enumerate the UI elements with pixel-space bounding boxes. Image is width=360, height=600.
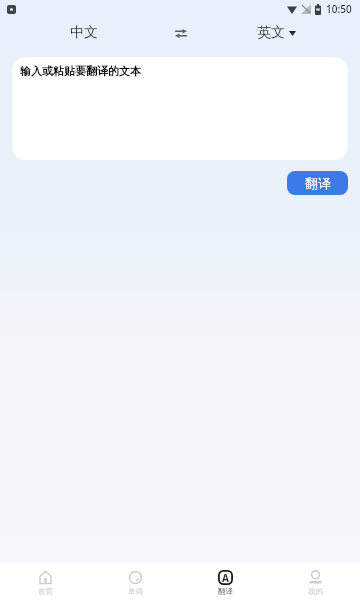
button[interactable]: 英文 xyxy=(257,24,296,42)
button[interactable]: 输入或粘贴要翻译的文本 xyxy=(12,57,348,160)
staticText: 翻译 xyxy=(218,587,233,596)
button[interactable] xyxy=(175,29,187,38)
staticText: 首页 xyxy=(38,587,53,596)
staticText: 我的 xyxy=(308,587,323,596)
staticText: 10:50 xyxy=(326,2,352,16)
button[interactable]: 翻译 xyxy=(287,171,348,195)
button[interactable]: 单词 xyxy=(90,563,180,600)
staticText: 输入或粘贴要翻译的文本 xyxy=(20,64,141,78)
staticText: 单词 xyxy=(128,587,143,596)
staticText: A xyxy=(222,571,229,585)
button[interactable]: 中文 xyxy=(70,24,98,42)
button[interactable]: 首页 xyxy=(0,563,90,600)
button[interactable]: A xyxy=(180,563,270,600)
staticText: 英文 xyxy=(257,24,285,42)
staticText: 翻译 xyxy=(305,175,331,191)
button[interactable]: 我的 xyxy=(270,563,360,600)
